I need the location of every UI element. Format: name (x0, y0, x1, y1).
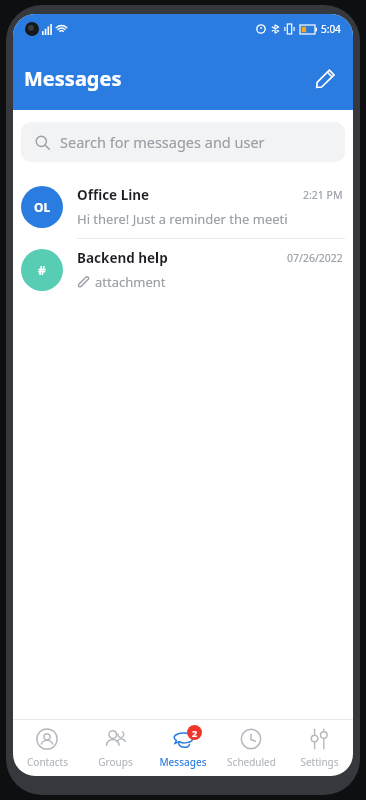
staticText: 2 (192, 727, 198, 739)
button[interactable]: Compose new message (307, 60, 343, 96)
button[interactable]: # (13, 239, 353, 301)
button[interactable]: Scheduled (217, 720, 285, 776)
staticText: Groups (98, 755, 133, 769)
button[interactable]: Contacts (13, 720, 81, 776)
staticText: attachment (95, 273, 166, 291)
staticText: Search for messages and user (60, 132, 265, 152)
staticText: 07/26/2022 (287, 251, 343, 265)
button[interactable]: Groups (81, 720, 149, 776)
staticText: Messages (159, 755, 207, 769)
staticText: Contacts (27, 755, 68, 769)
staticText: Hi there! Just a reminder the meeti (77, 210, 288, 228)
staticText: 5:04 (321, 22, 341, 36)
staticText: Office Line (77, 186, 150, 204)
staticText: Settings (300, 755, 339, 769)
staticText: Scheduled (227, 755, 276, 769)
button[interactable]: 2 (149, 720, 217, 776)
staticText: Messages (24, 65, 122, 92)
button[interactable]: Search for messages and user (21, 122, 345, 162)
staticText: # (38, 262, 46, 278)
button[interactable]: OL (13, 176, 353, 239)
staticText: 2:21 PM (303, 188, 343, 202)
staticText: OL (34, 199, 51, 215)
button[interactable]: Settings (285, 720, 353, 776)
staticText: Backend help (77, 249, 168, 267)
